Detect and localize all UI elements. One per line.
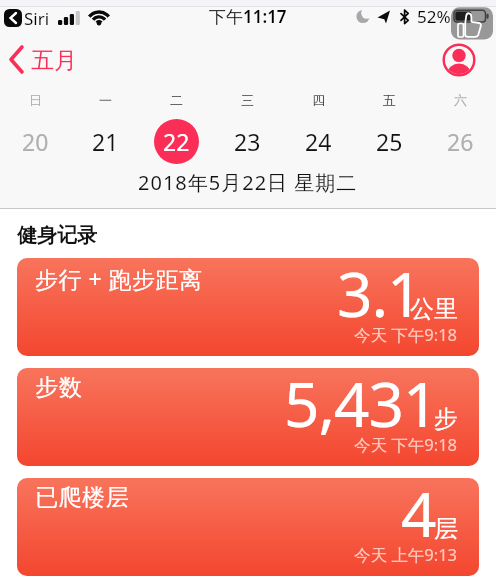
staticText: 今天 下午9:18 xyxy=(354,323,458,346)
staticText: 日 xyxy=(29,92,42,108)
staticText: 5,431 xyxy=(284,368,438,445)
button[interactable]: 步行 + 跑步距离 xyxy=(17,258,479,356)
button[interactable]: 步数 xyxy=(17,368,479,466)
staticText: 层 xyxy=(434,514,458,544)
staticText: 二 xyxy=(170,92,183,108)
staticText: 五 xyxy=(383,92,396,108)
staticText: 六 xyxy=(454,92,467,108)
staticText: 3.1 xyxy=(337,258,422,335)
staticText: 52% xyxy=(417,5,451,27)
staticText: 23 xyxy=(234,126,261,157)
staticText: 今天 上午9:13 xyxy=(354,543,458,566)
staticText: 一 xyxy=(99,92,112,108)
button[interactable] xyxy=(442,43,476,77)
button[interactable]: 20 xyxy=(13,119,58,164)
button[interactable]: 25 xyxy=(367,119,412,164)
staticText: 4 xyxy=(401,478,436,555)
button[interactable]: 五月 xyxy=(0,42,96,78)
staticText: 步行 + 跑步距离 xyxy=(35,263,203,294)
staticText: 健身记录 xyxy=(17,223,97,247)
staticText: 2018年5月22日 星期二 xyxy=(138,169,358,193)
staticText: 公里 xyxy=(410,294,458,324)
button[interactable]: 24 xyxy=(296,119,341,164)
staticText: 已爬楼层 xyxy=(35,483,129,512)
staticText: 25 xyxy=(376,126,403,157)
staticText: 24 xyxy=(305,126,332,157)
staticText: 步 xyxy=(434,404,458,434)
staticText: 22 xyxy=(163,126,190,157)
button[interactable]: 26 xyxy=(438,119,483,164)
staticText: 五月 xyxy=(31,46,77,75)
button[interactable]: 23 xyxy=(225,119,270,164)
staticText: 26 xyxy=(447,126,474,157)
staticText: 下午11:17 xyxy=(209,5,287,27)
button[interactable]: 21 xyxy=(83,119,128,164)
button[interactable]: 22 xyxy=(154,119,199,164)
staticText: 步数 xyxy=(35,373,82,402)
staticText: 20 xyxy=(22,126,49,157)
staticText: 今天 下午9:18 xyxy=(354,433,458,456)
staticText: 三 xyxy=(241,92,254,108)
button[interactable]: 已爬楼层 xyxy=(17,478,479,576)
staticText: 四 xyxy=(312,92,325,108)
staticText: 21 xyxy=(92,126,119,157)
staticText: Siri xyxy=(24,7,50,29)
